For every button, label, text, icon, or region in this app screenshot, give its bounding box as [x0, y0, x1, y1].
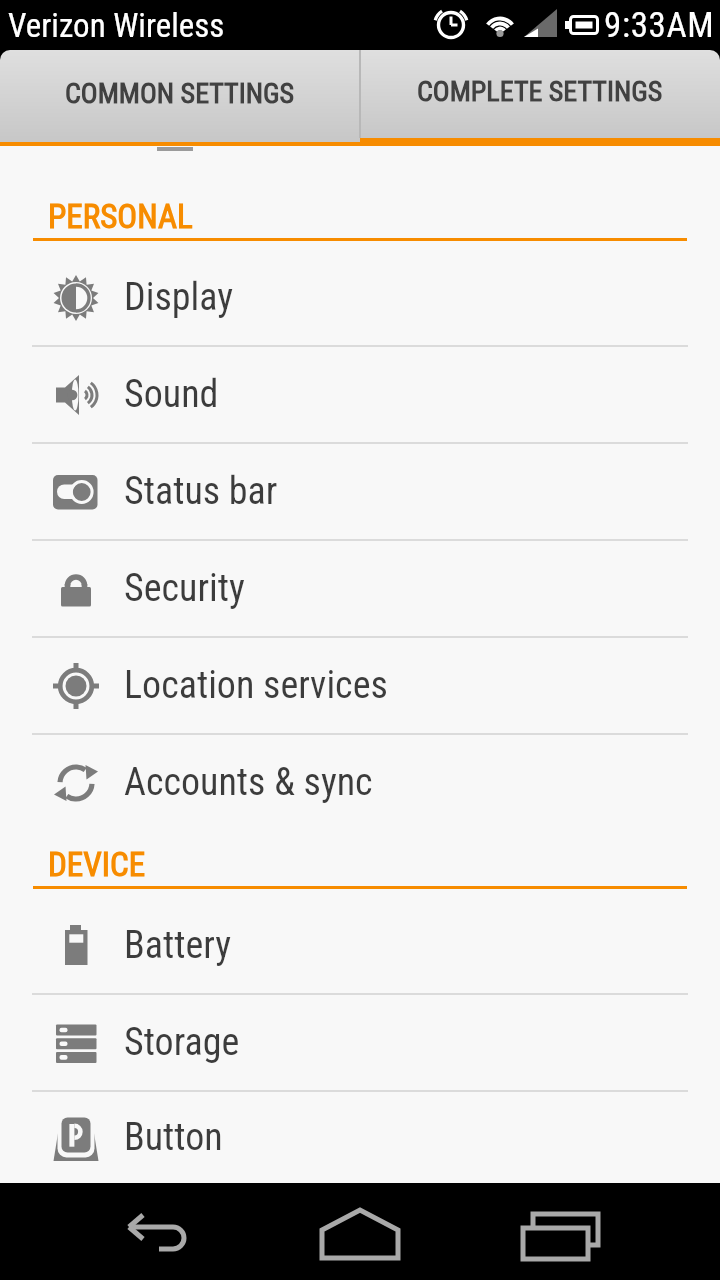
staticText: Sound	[124, 372, 219, 417]
button[interactable]: Battery	[0, 898, 720, 993]
button[interactable]: Display	[0, 250, 720, 345]
staticText: 9:33AM	[604, 5, 715, 46]
staticText: Verizon Wireless	[8, 6, 225, 45]
button[interactable]: COMMON SETTINGS	[0, 50, 360, 146]
button[interactable]: Sound	[0, 347, 720, 442]
button[interactable]	[300, 1183, 420, 1280]
staticText: Security	[124, 566, 245, 611]
staticText: DEVICE	[48, 845, 146, 884]
button[interactable]	[500, 1183, 620, 1280]
staticText: Location services	[124, 663, 388, 708]
staticText: Button	[124, 1115, 223, 1160]
button[interactable]: Accounts & sync	[0, 735, 720, 830]
button[interactable]	[103, 1183, 223, 1280]
button[interactable]: Status bar	[0, 444, 720, 539]
staticText: COMMON SETTINGS	[65, 77, 295, 110]
staticText: Storage	[124, 1020, 240, 1065]
staticText: PERSONAL	[48, 197, 193, 236]
button[interactable]: Button	[0, 1092, 720, 1183]
button[interactable]: Storage	[0, 995, 720, 1090]
button[interactable]: Security	[0, 541, 720, 636]
staticText: Battery	[124, 923, 231, 968]
staticText: Display	[124, 275, 233, 320]
staticText: Status bar	[124, 469, 278, 514]
staticText: Accounts & sync	[124, 760, 373, 805]
button[interactable]: Location services	[0, 638, 720, 733]
staticText: COMPLETE SETTINGS	[417, 75, 663, 108]
button[interactable]: COMPLETE SETTINGS	[360, 50, 720, 146]
